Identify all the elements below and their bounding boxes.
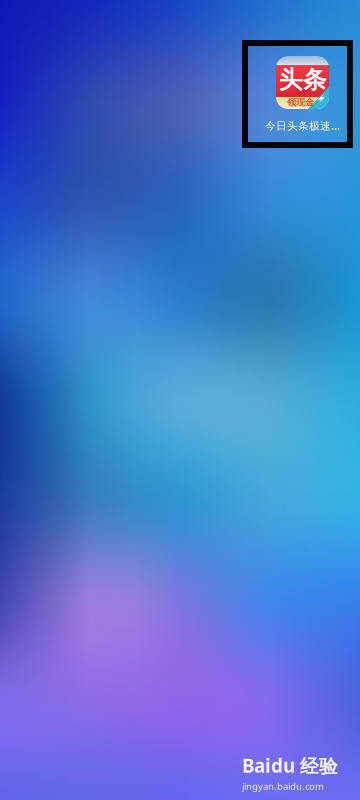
staticText: 头条 <box>278 65 326 95</box>
staticText: 领现金 <box>287 97 314 108</box>
staticText: Baidu 经验 <box>242 753 338 778</box>
staticText: 今日头条极速… <box>265 118 340 133</box>
button[interactable]: 头条 <box>253 46 352 142</box>
staticText: jingyan.baidu.com <box>242 780 324 792</box>
